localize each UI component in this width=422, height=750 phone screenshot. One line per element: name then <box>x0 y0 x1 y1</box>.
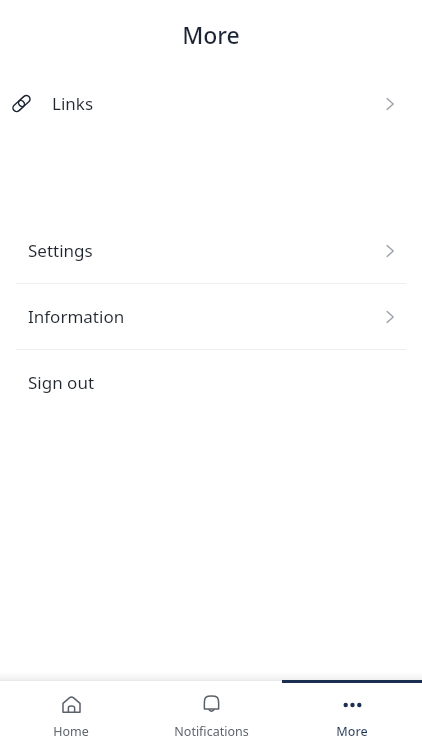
staticText: More <box>182 19 240 50</box>
button[interactable]: Sign out <box>0 350 422 415</box>
staticText: Sign out <box>28 371 95 394</box>
staticText: Home <box>53 723 89 740</box>
button[interactable]: Information <box>0 284 422 349</box>
button[interactable]: Notifications <box>141 680 282 750</box>
staticText: Settings <box>28 239 93 262</box>
staticText: Links <box>52 92 94 115</box>
button[interactable]: More <box>282 680 422 750</box>
button[interactable]: Settings <box>0 218 422 283</box>
button[interactable]: Links <box>0 68 422 138</box>
staticText: Information <box>28 305 125 328</box>
staticText: Notifications <box>174 723 249 740</box>
staticText: More <box>336 723 368 740</box>
button[interactable]: Home <box>0 680 141 750</box>
